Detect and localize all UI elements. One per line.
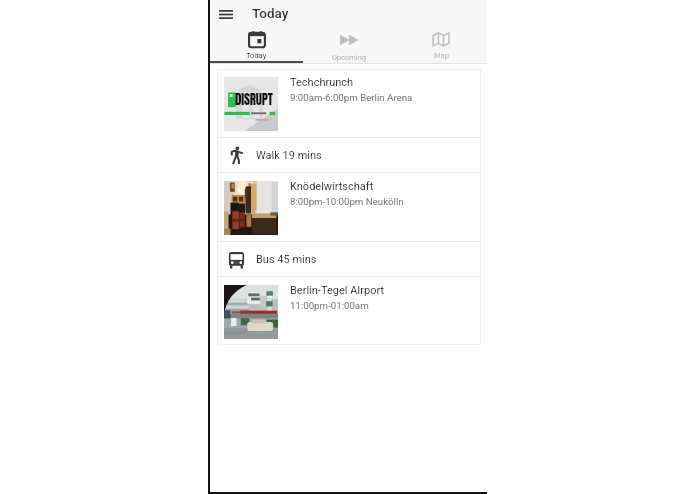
button[interactable]: Menu [216,4,236,24]
staticText: Walk 19 mins [256,149,322,162]
button[interactable]: Bus 45 mins [217,242,481,276]
staticText: Berlin-Tegel AIrport [290,284,385,297]
button[interactable]: Map [395,27,487,63]
staticText: Bus 45 mins [256,253,317,266]
staticText: Map [434,51,449,60]
staticText: Upcoming [332,53,367,62]
button[interactable]: Berlin-Tegel AIrport [217,277,481,345]
staticText: Techchrunch [290,76,354,89]
staticText: Knödelwirtschaft [290,180,374,193]
button[interactable]: DISRUPT [217,69,481,137]
button[interactable]: Upcoming [303,27,395,63]
staticText: 9:00am-6:00pm Berlin Arena [290,92,413,103]
button[interactable]: Knödelwirtschaft [217,173,481,241]
staticText: DISRUPT [235,90,273,110]
staticText: Today [252,5,289,21]
staticText: Today [246,51,267,60]
button[interactable]: Today [210,27,303,63]
staticText: 8:00pm-10:00pm Neukölln [290,196,404,207]
staticText: 11:00pm-01:00am [290,300,369,311]
button[interactable]: Walk 19 mins [217,138,481,172]
